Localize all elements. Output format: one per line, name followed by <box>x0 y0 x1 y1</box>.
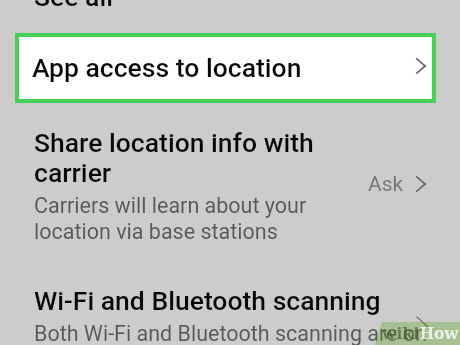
staticText: Share location info with carrier <box>34 128 334 188</box>
staticText: App access to location <box>32 53 302 83</box>
staticText: Ask <box>368 170 404 196</box>
button[interactable]: See all <box>0 0 460 12</box>
staticText: How <box>420 321 459 344</box>
button[interactable]: App access to location <box>19 37 432 99</box>
staticText: wiki <box>382 321 420 344</box>
other: Change carrier location sharing <box>416 176 426 192</box>
button[interactable]: Share location info with carrier <box>0 120 460 258</box>
other: Open app access to location <box>416 58 426 74</box>
staticText: Both Wi-Fi and Bluetooth scanning are on <box>34 320 427 345</box>
button[interactable]: Wi-Fi and Bluetooth scanning <box>0 278 460 345</box>
staticText: Carriers will learn about your location … <box>34 192 334 244</box>
staticText: See all <box>34 0 113 12</box>
staticText: Wi-Fi and Bluetooth scanning <box>34 286 381 316</box>
